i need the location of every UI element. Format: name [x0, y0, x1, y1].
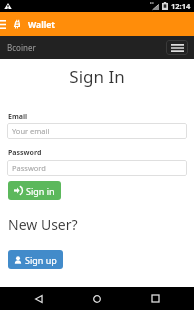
staticText: New User? — [8, 215, 78, 234]
button[interactable]: Sign up — [8, 250, 63, 269]
staticText: Password — [12, 163, 46, 173]
staticText: Your email — [12, 126, 50, 136]
button[interactable]: Password — [7, 160, 187, 176]
staticText: Sign up — [25, 254, 57, 266]
button[interactable]: Your email — [7, 123, 187, 139]
staticText: Password — [8, 148, 42, 158]
staticText: Email — [8, 112, 28, 122]
staticText: Wallet — [28, 19, 55, 31]
button[interactable]: Back — [29, 287, 49, 310]
staticText: Sign In — [0, 65, 194, 88]
button[interactable]: Recents — [145, 287, 165, 310]
staticText: Sign in — [26, 185, 55, 197]
button[interactable]: Open navigation drawer — [0, 12, 10, 36]
button[interactable]: Toggle navigation — [166, 40, 188, 55]
button[interactable]: Home — [87, 287, 107, 310]
button[interactable]: Sign in — [8, 181, 61, 200]
staticText: 12:14 — [171, 1, 191, 11]
staticText: Bcoiner — [7, 42, 36, 53]
